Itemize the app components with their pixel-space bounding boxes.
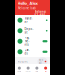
staticText: See all — [39, 58, 44, 65]
staticText: Me — [45, 71, 47, 72]
staticText: Recent — [17, 60, 27, 63]
staticText: Payments — [24, 36, 29, 46]
staticText: Stats — [35, 71, 38, 72]
button[interactable]: Cards — [15, 46, 50, 57]
staticText: Welcome back — [17, 6, 35, 10]
button[interactable]: Transfer — [15, 15, 50, 25]
staticText: Home — [17, 71, 21, 72]
staticText: Deposit — [24, 27, 33, 34]
button[interactable]: Home — [15, 64, 24, 75]
button[interactable]: Deposit — [15, 25, 50, 36]
button[interactable]: Stats — [32, 64, 41, 75]
button[interactable]: Payments — [15, 36, 50, 46]
button[interactable]: Cards — [24, 64, 33, 75]
staticText: Transfer — [24, 17, 32, 24]
staticText: Cards — [26, 71, 31, 72]
staticText: Balance $2,480 — [34, 10, 47, 17]
button[interactable]: Me — [41, 64, 50, 75]
staticText: Hello, Alex — [17, 0, 37, 6]
staticText: Cards — [24, 48, 29, 55]
